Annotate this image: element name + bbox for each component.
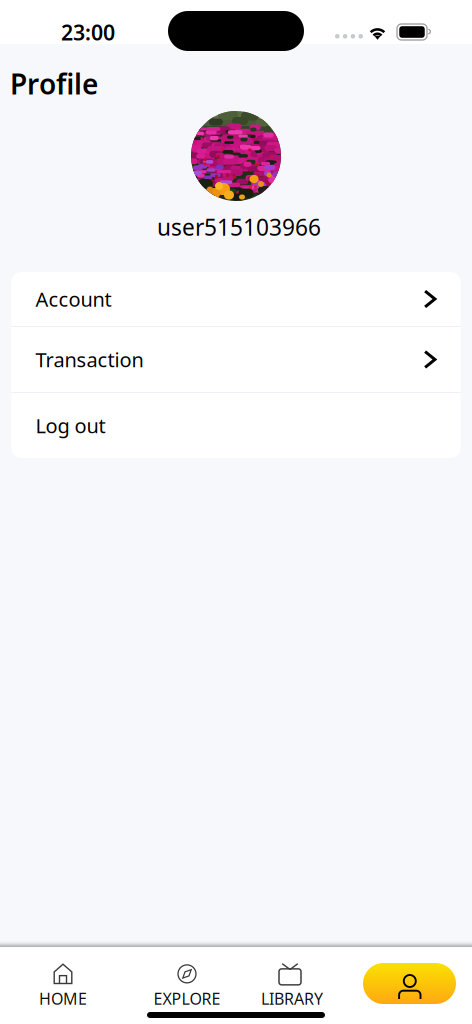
button[interactable]: HOME (23, 966, 103, 1006)
staticText: Log out (35, 412, 105, 439)
button[interactable]: EXPLORE (137, 966, 237, 1006)
staticText: Account (35, 286, 111, 312)
button[interactable]: Profile (363, 963, 456, 1004)
staticText: EXPLORE (153, 988, 220, 1009)
staticText: user515103966 (157, 212, 321, 242)
button[interactable]: Transaction (11, 327, 460, 392)
staticText: HOME (39, 988, 87, 1009)
button[interactable]: Account (11, 272, 460, 326)
staticText: Profile (10, 65, 98, 102)
staticText: 23:00 (61, 18, 115, 46)
button[interactable]: Log out (11, 393, 460, 458)
staticText: LIBRARY (261, 988, 323, 1009)
staticText: Transaction (35, 346, 143, 373)
button[interactable]: LIBRARY (242, 966, 342, 1006)
